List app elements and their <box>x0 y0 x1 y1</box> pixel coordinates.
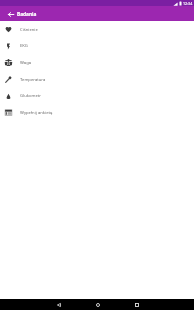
staticText: 12:34 <box>183 1 193 6</box>
button[interactable]: Ciśnienie <box>0 21 194 38</box>
staticText: Wypełnij ankietę <box>20 110 53 116</box>
button[interactable]: Glukometr <box>0 88 194 104</box>
staticText: Badania <box>17 11 37 18</box>
staticText: Glukometr <box>20 93 42 99</box>
staticText: EKG <box>20 43 28 49</box>
button[interactable]: Wypełnij ankietę <box>0 104 194 121</box>
button[interactable]: Back <box>44 299 73 310</box>
button[interactable]: Waga <box>0 54 194 71</box>
staticText: Ciśnienie <box>20 27 38 33</box>
button[interactable]: EKG <box>0 38 194 54</box>
button[interactable]: Home <box>83 299 112 310</box>
staticText: Waga <box>20 60 32 66</box>
button[interactable]: Recent apps <box>122 299 151 310</box>
button[interactable]: Temperatura <box>0 71 194 88</box>
button[interactable]: Navigate up <box>0 6 17 21</box>
staticText: Temperatura <box>20 77 46 83</box>
